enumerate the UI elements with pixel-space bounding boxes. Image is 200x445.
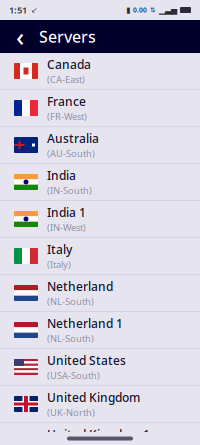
staticText: Netherland 1 (47, 315, 123, 331)
button[interactable]: Italy (0, 238, 200, 275)
button[interactable]: United States (0, 349, 200, 386)
staticText: (Italy) (47, 258, 71, 271)
staticText: United Kingdom (47, 389, 140, 405)
staticText: (NL-South) (47, 295, 94, 308)
staticText: 1:51 (9, 4, 27, 16)
button[interactable]: India (0, 164, 200, 201)
staticText: (IN-West) (47, 221, 86, 234)
staticText: ‹ (16, 20, 24, 53)
button[interactable]: United Kingdom (0, 386, 200, 423)
staticText: Australia (47, 130, 99, 146)
button[interactable]: United Kingdom 1 (0, 423, 200, 445)
staticText: United States (47, 352, 126, 368)
button[interactable]: Canada (0, 53, 200, 90)
staticText: Netherland (47, 278, 113, 294)
staticText: Italy (47, 241, 72, 257)
staticText: ⇅ (150, 6, 156, 14)
button[interactable]: Back (9, 20, 31, 53)
staticText: ▮ (126, 5, 130, 15)
staticText: India (47, 167, 76, 183)
staticText: United Kingdom 1 (47, 426, 150, 442)
button[interactable]: Australia (0, 127, 200, 164)
button[interactable]: Netherland (0, 275, 200, 312)
staticText: India 1 (47, 204, 86, 220)
staticText: (IN-South) (47, 184, 92, 197)
staticText: (USA-South) (47, 369, 100, 382)
staticText: (AU-South) (47, 147, 95, 160)
button[interactable]: France (0, 90, 200, 127)
staticText: Servers (39, 26, 96, 47)
staticText: (CA-East) (47, 73, 85, 86)
staticText: 0.00 (133, 6, 147, 14)
staticText: France (47, 93, 86, 109)
button[interactable]: India 1 (0, 201, 200, 238)
staticText: ↙ (31, 5, 38, 15)
staticText: (UK-North) (47, 406, 95, 419)
staticText: Canada (47, 56, 91, 72)
staticText: ▁▃▅ (159, 5, 177, 15)
button[interactable]: Netherland 1 (0, 312, 200, 349)
staticText: (NL-South) (47, 332, 94, 345)
staticText: (FR-West) (47, 110, 87, 123)
